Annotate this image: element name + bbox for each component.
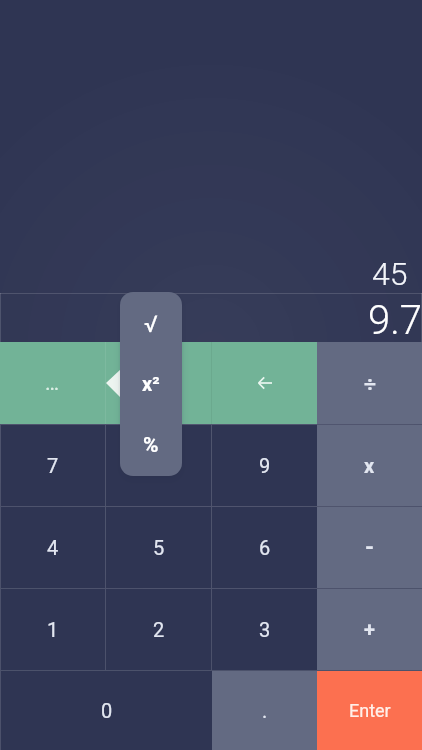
- staticText: %: [143, 433, 159, 458]
- button[interactable]: Square: [120, 355, 182, 413]
- button[interactable]: Backspace: [212, 342, 317, 424]
- button[interactable]: More functions: [0, 342, 105, 424]
- staticText: x: [364, 454, 375, 477]
- button[interactable]: 1: [1, 589, 105, 670]
- staticText: √: [144, 311, 158, 338]
- button[interactable]: Plus: [317, 589, 422, 670]
- button[interactable]: 0: [1, 671, 212, 750]
- button[interactable]: 2: [106, 589, 211, 670]
- staticText: .: [262, 699, 268, 722]
- staticText: 2: [153, 618, 165, 641]
- staticText: 9: [259, 454, 271, 477]
- staticText: 8: [153, 454, 165, 477]
- button[interactable]: 6: [212, 507, 317, 588]
- staticText: 7: [47, 454, 59, 477]
- staticText: 4: [47, 536, 59, 559]
- staticText: x²: [142, 372, 160, 395]
- button[interactable]: Divide: [317, 342, 422, 424]
- button[interactable]: 8: [106, 425, 211, 506]
- staticText: 0: [101, 699, 113, 722]
- staticText: 6: [259, 536, 271, 559]
- button[interactable]: Minus: [317, 507, 422, 588]
- button[interactable]: Enter: [317, 671, 422, 750]
- staticText: Enter: [349, 700, 391, 721]
- staticText: 9.7: [368, 297, 422, 344]
- button[interactable]: Percent: [120, 416, 182, 474]
- button[interactable]: 9: [212, 425, 317, 506]
- staticText: …: [45, 371, 60, 396]
- staticText: 1: [47, 618, 59, 641]
- staticText: ÷: [364, 372, 376, 397]
- button[interactable]: Multiply: [317, 425, 422, 506]
- button[interactable]: 3: [212, 589, 317, 670]
- button[interactable]: 4: [1, 507, 105, 588]
- staticText: -: [365, 534, 375, 561]
- staticText: 5: [153, 536, 165, 559]
- button[interactable]: Square root: [120, 295, 182, 353]
- staticText: 3: [259, 618, 271, 641]
- button[interactable]: 7: [1, 425, 105, 506]
- staticText: 45: [372, 255, 408, 293]
- button[interactable]: 5: [106, 507, 211, 588]
- button[interactable]: Functions: [106, 342, 211, 424]
- staticText: +: [364, 618, 375, 641]
